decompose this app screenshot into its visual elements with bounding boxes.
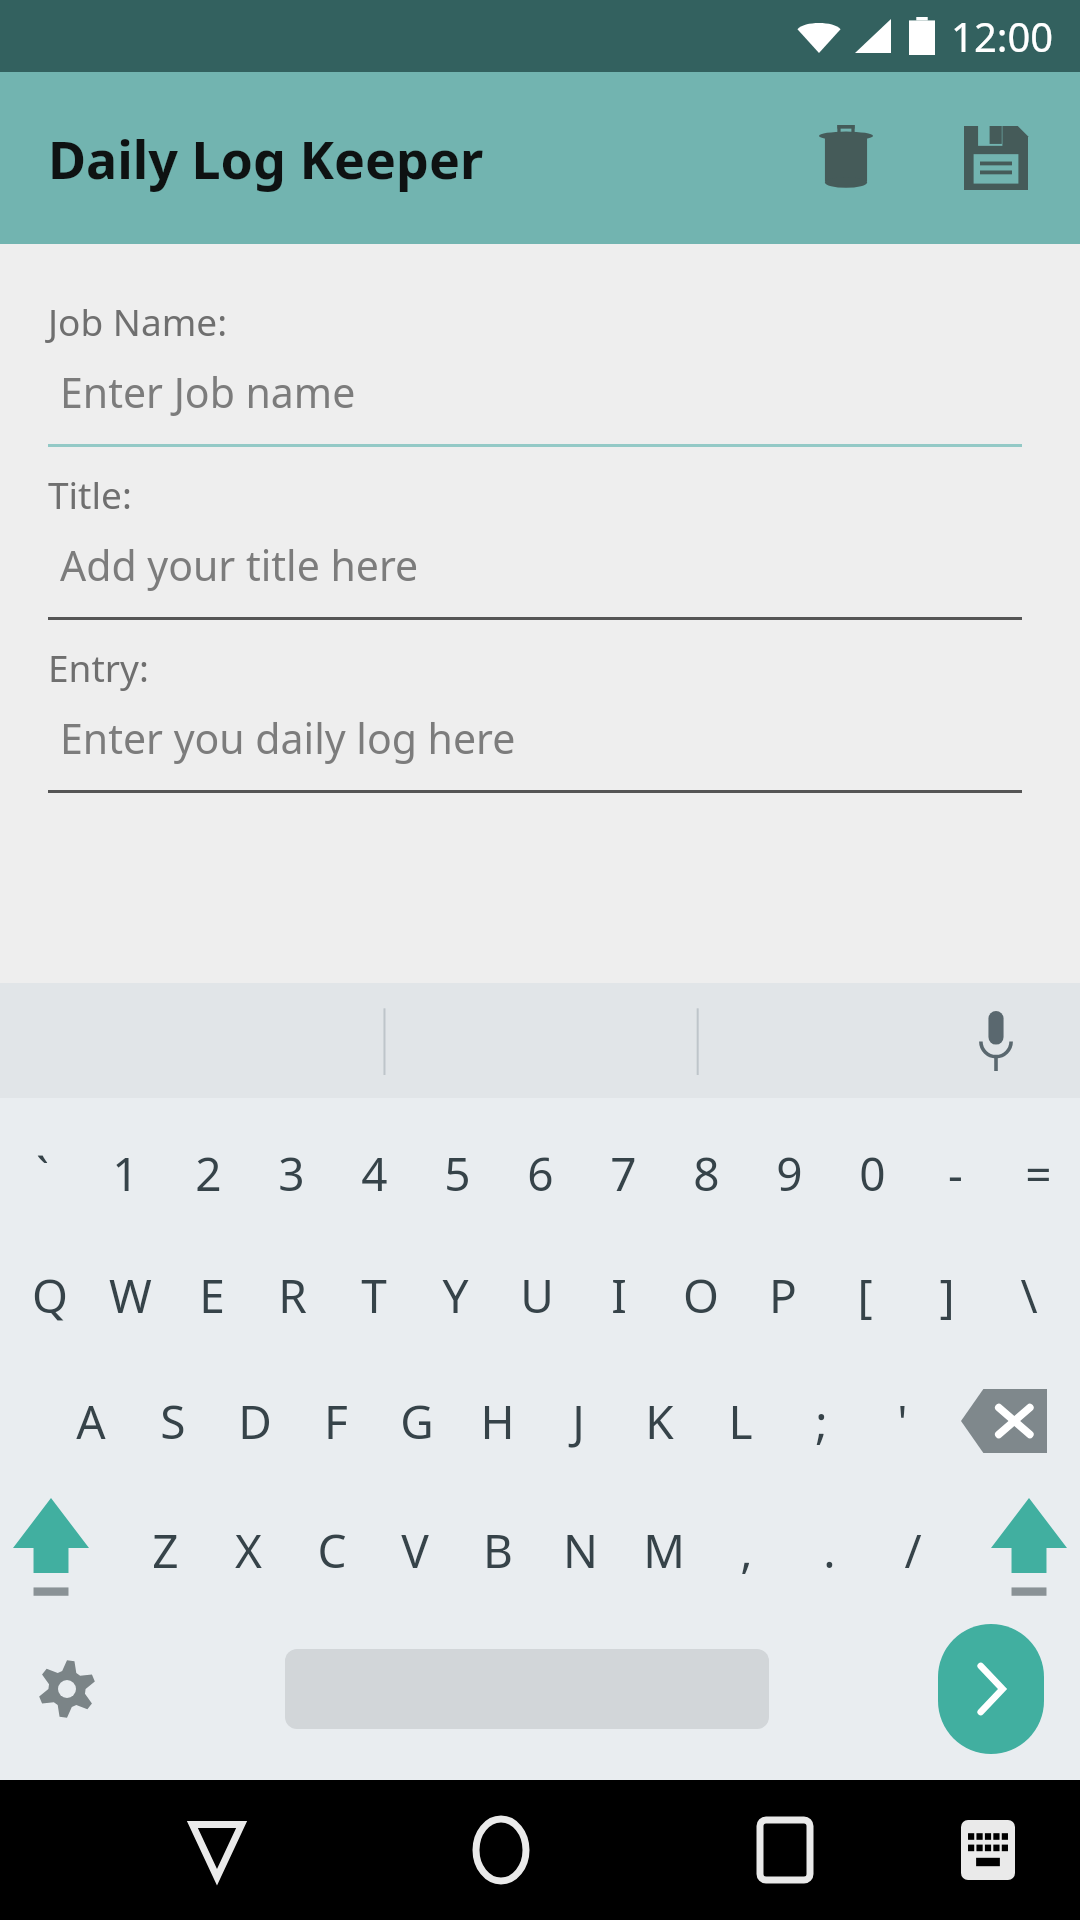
- button[interactable]: H: [457, 1358, 538, 1484]
- staticText: 3: [278, 1142, 305, 1205]
- button[interactable]: 3: [250, 1114, 333, 1232]
- button[interactable]: Shift: [0, 1484, 102, 1616]
- staticText: 0: [859, 1142, 886, 1205]
- button[interactable]: Enter Job name: [48, 364, 1022, 447]
- staticText: O: [683, 1264, 719, 1327]
- staticText: ;: [815, 1390, 828, 1453]
- button[interactable]: 0: [831, 1114, 914, 1232]
- button[interactable]: Switch keyboard: [930, 1792, 1046, 1908]
- staticText: `: [36, 1142, 49, 1205]
- staticText: 5: [444, 1142, 471, 1205]
- button[interactable]: Save: [946, 108, 1046, 208]
- button[interactable]: 9: [748, 1114, 831, 1232]
- staticText: T: [361, 1264, 387, 1327]
- button[interactable]: Add your title here: [48, 537, 1022, 620]
- staticText: 12:00: [951, 9, 1054, 63]
- button[interactable]: Home: [443, 1792, 559, 1908]
- button[interactable]: T: [333, 1232, 414, 1358]
- staticText: A: [76, 1390, 106, 1453]
- button[interactable]: F: [295, 1358, 376, 1484]
- button[interactable]: 5: [416, 1114, 499, 1232]
- staticText: F: [324, 1390, 348, 1453]
- button[interactable]: K: [619, 1358, 700, 1484]
- button[interactable]: X: [207, 1484, 290, 1616]
- staticText: 1: [112, 1142, 139, 1205]
- staticText: X: [235, 1519, 262, 1582]
- staticText: Enter you daily log here: [60, 710, 516, 766]
- staticText: .: [823, 1519, 836, 1582]
- button[interactable]: ': [862, 1358, 943, 1484]
- button[interactable]: /: [871, 1484, 954, 1616]
- staticText: Entry:: [48, 642, 149, 692]
- button[interactable]: `: [0, 1114, 84, 1232]
- staticText: B: [483, 1519, 513, 1582]
- staticText: 6: [527, 1142, 554, 1205]
- button[interactable]: A: [50, 1358, 132, 1484]
- button[interactable]: Voice input: [950, 995, 1042, 1087]
- staticText: \: [1020, 1264, 1038, 1327]
- button[interactable]: 6: [499, 1114, 582, 1232]
- button[interactable]: 2: [167, 1114, 250, 1232]
- button[interactable]: R: [252, 1232, 333, 1358]
- staticText: Y: [442, 1264, 469, 1327]
- button[interactable]: =: [997, 1114, 1080, 1232]
- button[interactable]: I: [578, 1232, 660, 1358]
- button[interactable]: ,: [705, 1484, 788, 1616]
- staticText: U: [520, 1264, 554, 1327]
- button[interactable]: Delete: [796, 108, 896, 208]
- staticText: 4: [361, 1142, 388, 1205]
- button[interactable]: N: [539, 1484, 622, 1616]
- button[interactable]: -: [914, 1114, 997, 1232]
- button[interactable]: 1: [84, 1114, 167, 1232]
- staticText: Enter Job name: [60, 364, 356, 420]
- button[interactable]: E: [171, 1232, 252, 1358]
- button[interactable]: Z: [124, 1484, 207, 1616]
- button[interactable]: M: [622, 1484, 705, 1616]
- staticText: Add your title here: [60, 537, 419, 593]
- button[interactable]: Next: [932, 1621, 1050, 1757]
- button[interactable]: Enter you daily log here: [48, 710, 1022, 793]
- button[interactable]: Shift: [977, 1484, 1080, 1616]
- button[interactable]: Settings: [12, 1623, 122, 1755]
- button[interactable]: 7: [582, 1114, 665, 1232]
- staticText: =: [1025, 1142, 1052, 1205]
- button[interactable]: Q: [9, 1232, 90, 1358]
- button[interactable]: Y: [414, 1232, 496, 1358]
- staticText: ,: [740, 1519, 753, 1582]
- button[interactable]: Recent apps: [727, 1792, 843, 1908]
- staticText: G: [400, 1390, 434, 1453]
- button[interactable]: V: [373, 1484, 456, 1616]
- button[interactable]: Back: [159, 1792, 275, 1908]
- button[interactable]: ]: [906, 1232, 988, 1358]
- button[interactable]: [: [824, 1232, 906, 1358]
- button[interactable]: L: [700, 1358, 781, 1484]
- staticText: /: [904, 1519, 922, 1582]
- button[interactable]: U: [496, 1232, 578, 1358]
- button[interactable]: B: [456, 1484, 539, 1616]
- staticText: J: [572, 1390, 585, 1453]
- staticText: Title:: [48, 469, 132, 519]
- staticText: Daily Log Keeper: [48, 123, 484, 194]
- button[interactable]: W: [90, 1232, 171, 1358]
- staticText: Z: [152, 1519, 179, 1582]
- staticText: ]: [939, 1264, 955, 1327]
- button[interactable]: ;: [781, 1358, 862, 1484]
- button[interactable]: 4: [333, 1114, 416, 1232]
- button[interactable]: 8: [665, 1114, 748, 1232]
- button[interactable]: Backspace: [943, 1358, 1065, 1484]
- staticText: 2: [195, 1142, 222, 1205]
- button[interactable]: C: [290, 1484, 373, 1616]
- button[interactable]: G: [376, 1358, 457, 1484]
- button[interactable]: .: [788, 1484, 871, 1616]
- staticText: -: [948, 1142, 963, 1205]
- button[interactable]: P: [742, 1232, 824, 1358]
- button[interactable]: S: [132, 1358, 214, 1484]
- button[interactable]: J: [538, 1358, 619, 1484]
- button[interactable]: \: [988, 1232, 1070, 1358]
- staticText: C: [317, 1519, 347, 1582]
- button[interactable]: D: [214, 1358, 295, 1484]
- button[interactable]: O: [660, 1232, 742, 1358]
- staticText: D: [238, 1390, 272, 1453]
- staticText: Job Name:: [48, 296, 228, 346]
